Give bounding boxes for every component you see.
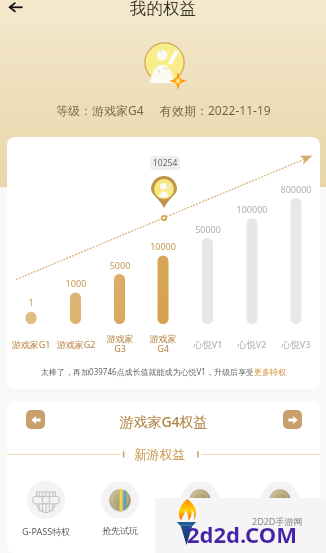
- staticText: 我的权益: [130, 0, 196, 16]
- staticText: 心悦V2: [229, 338, 275, 350]
- staticText: 专属客服: [182, 525, 218, 536]
- staticText: 800000: [274, 183, 318, 195]
- staticText: 生日礼包: [262, 525, 298, 536]
- staticText: 抢先试玩: [102, 525, 138, 536]
- staticText: 心悦V1: [185, 338, 231, 350]
- button[interactable]: G-PASS特权: [8, 481, 84, 537]
- staticText: 游戏家 G4: [140, 333, 186, 355]
- staticText: 100000: [230, 203, 274, 215]
- staticText: 10000: [141, 240, 185, 252]
- staticText: 游戏家G4权益: [7, 412, 320, 431]
- staticText: 游戏家G2: [53, 338, 99, 350]
- staticText: 有效期：2022-11-19: [160, 102, 271, 118]
- staticText: 新游权益: [134, 447, 186, 463]
- staticText: 游戏家 G3: [97, 333, 143, 355]
- button[interactable]: Back: [4, 0, 28, 16]
- button[interactable]: 抢先试玩: [82, 481, 158, 536]
- staticText: 50000: [186, 223, 230, 235]
- staticText: 1000: [54, 277, 98, 289]
- staticText: 心悦V3: [273, 338, 319, 350]
- button[interactable]: 生日礼包: [242, 481, 318, 536]
- button[interactable]: Next tier: [283, 410, 302, 429]
- staticText: 2d2d.COM: [187, 519, 297, 549]
- button[interactable]: Previous tier: [26, 410, 45, 429]
- staticText: G-PASS特权: [22, 525, 71, 537]
- staticText: 太棒了，再加039746点成长值就能成为心悦V1，升级后享受更多特权: [7, 366, 320, 377]
- staticText: 10254: [153, 157, 178, 169]
- staticText: 1: [9, 296, 53, 308]
- staticText: 等级：游戏家G4: [56, 102, 144, 118]
- staticText: 2D2D手游网: [252, 515, 303, 527]
- staticText: 游戏家G1: [8, 338, 54, 350]
- button[interactable]: 专属客服: [162, 481, 238, 536]
- staticText: 5000: [98, 259, 142, 271]
